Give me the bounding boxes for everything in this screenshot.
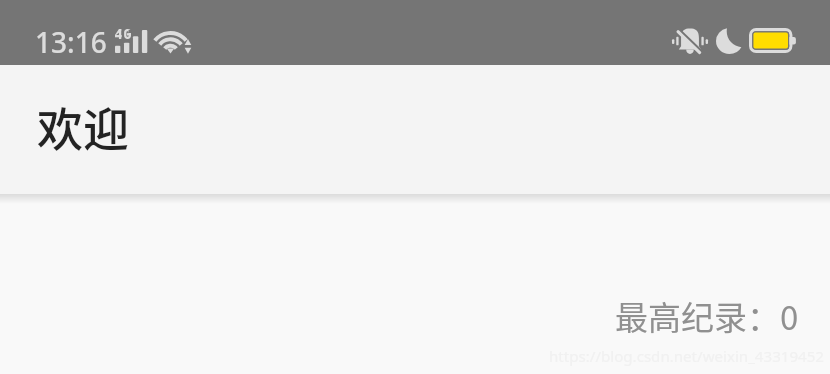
staticText: 欢迎 — [37, 93, 129, 160]
other: Silent mode — [671, 27, 709, 54]
staticText: 13:16 — [35, 23, 107, 61]
other: Wi-Fi connected — [157, 28, 192, 55]
staticText: 最高纪录：0 — [615, 292, 799, 340]
button[interactable]: 欢迎 — [0, 65, 830, 194]
other: Mobile signal 4G — [115, 30, 148, 53]
other: Do not disturb — [716, 28, 743, 54]
other: Battery full — [749, 28, 797, 53]
button[interactable]: 最高纪录：0 — [615, 292, 799, 340]
